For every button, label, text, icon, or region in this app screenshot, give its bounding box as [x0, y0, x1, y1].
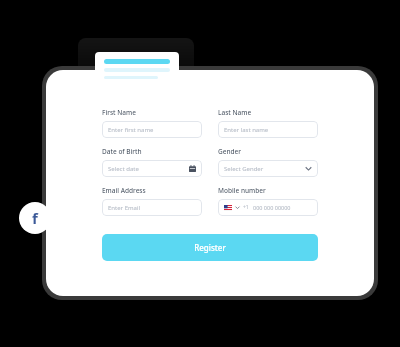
- button[interactable]: [95, 52, 179, 86]
- staticText: Enter first name: [108, 126, 154, 134]
- staticText: Email Address: [102, 186, 146, 195]
- staticText: Select Gender: [224, 165, 264, 173]
- button[interactable]: Register: [102, 234, 318, 261]
- other: Country code United States: [224, 205, 232, 211]
- staticText: Mobile number: [218, 186, 266, 195]
- staticText: Date of Birth: [102, 147, 142, 156]
- staticText: First Name: [102, 108, 136, 117]
- staticText: +1: [243, 204, 249, 211]
- staticText: Enter last name: [224, 126, 269, 134]
- button[interactable]: Select Gender: [218, 160, 318, 177]
- button[interactable]: Enter first name: [102, 121, 202, 138]
- staticText: Gender: [218, 147, 242, 156]
- other: Open options: [305, 165, 312, 172]
- staticText: f: [32, 208, 38, 228]
- staticText: Last Name: [218, 108, 252, 117]
- staticText: Register: [194, 242, 226, 253]
- button[interactable]: Enter Email: [102, 199, 202, 216]
- staticText: Select date: [108, 165, 139, 173]
- button[interactable]: Select date: [102, 160, 202, 177]
- staticText: 000 000 00000: [253, 204, 291, 211]
- staticText: Enter Email: [108, 204, 141, 212]
- button[interactable]: Enter last name: [218, 121, 318, 138]
- button[interactable]: Facebook: [19, 202, 51, 234]
- other: Pick date: [189, 165, 196, 172]
- other: Open options: [235, 205, 240, 210]
- button[interactable]: Country code United States: [218, 199, 318, 216]
